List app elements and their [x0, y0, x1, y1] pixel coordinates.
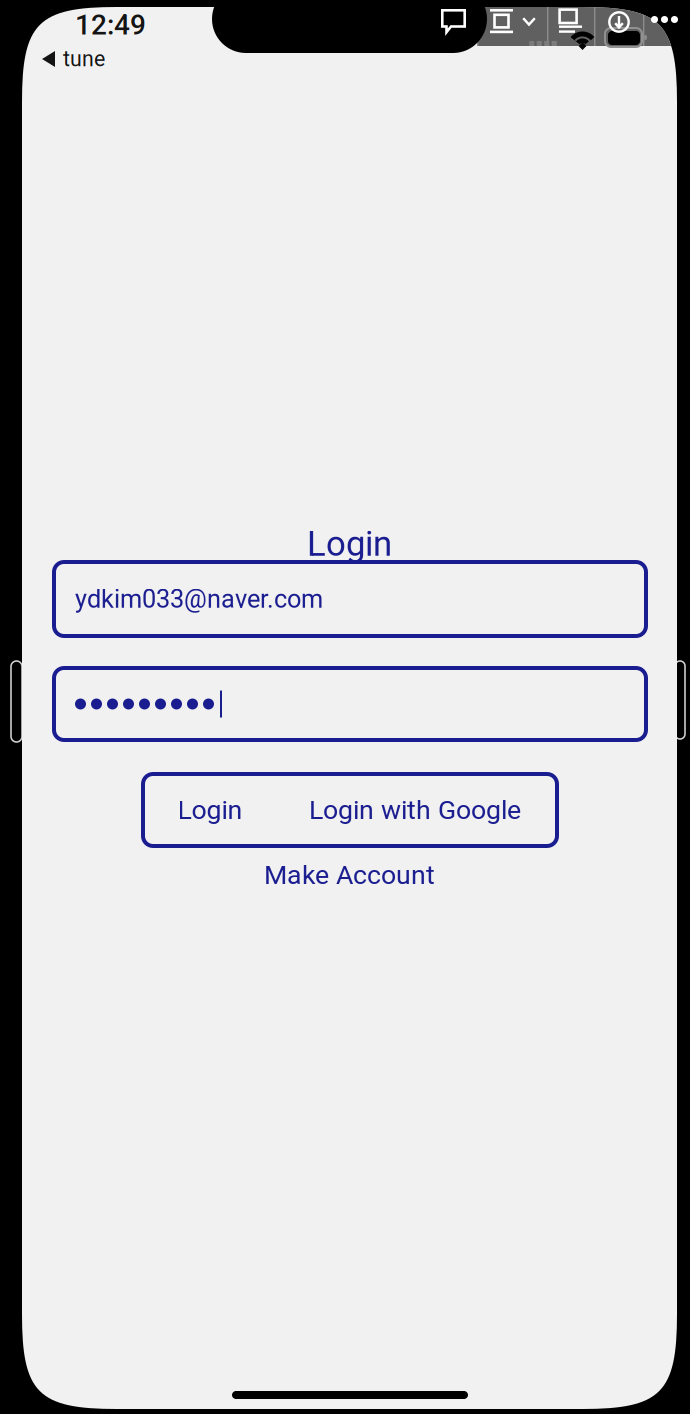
staticText: 12:49 [75, 9, 146, 41]
button[interactable]: Make Account [22, 855, 677, 895]
staticText: ydkim033@naver.com [75, 584, 323, 614]
staticText: tune [63, 46, 105, 71]
staticText: Login with Google [309, 794, 521, 826]
staticText: Login [177, 794, 242, 826]
button[interactable]: Login with Google [275, 776, 555, 844]
staticText: Login [307, 524, 392, 564]
button[interactable]: Login [145, 776, 275, 844]
staticText: Make Account [264, 859, 435, 891]
